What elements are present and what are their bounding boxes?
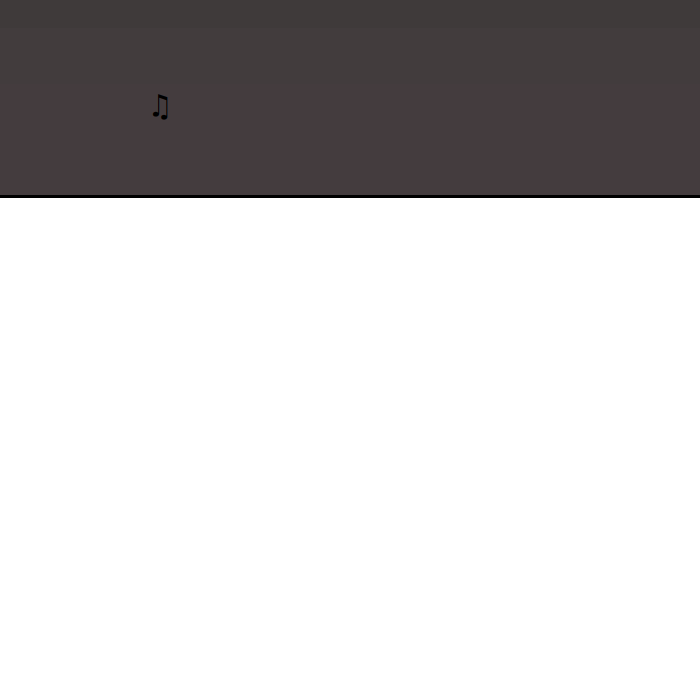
button[interactable]: Now Playing <box>148 88 173 124</box>
staticText: ♫ <box>148 88 173 124</box>
